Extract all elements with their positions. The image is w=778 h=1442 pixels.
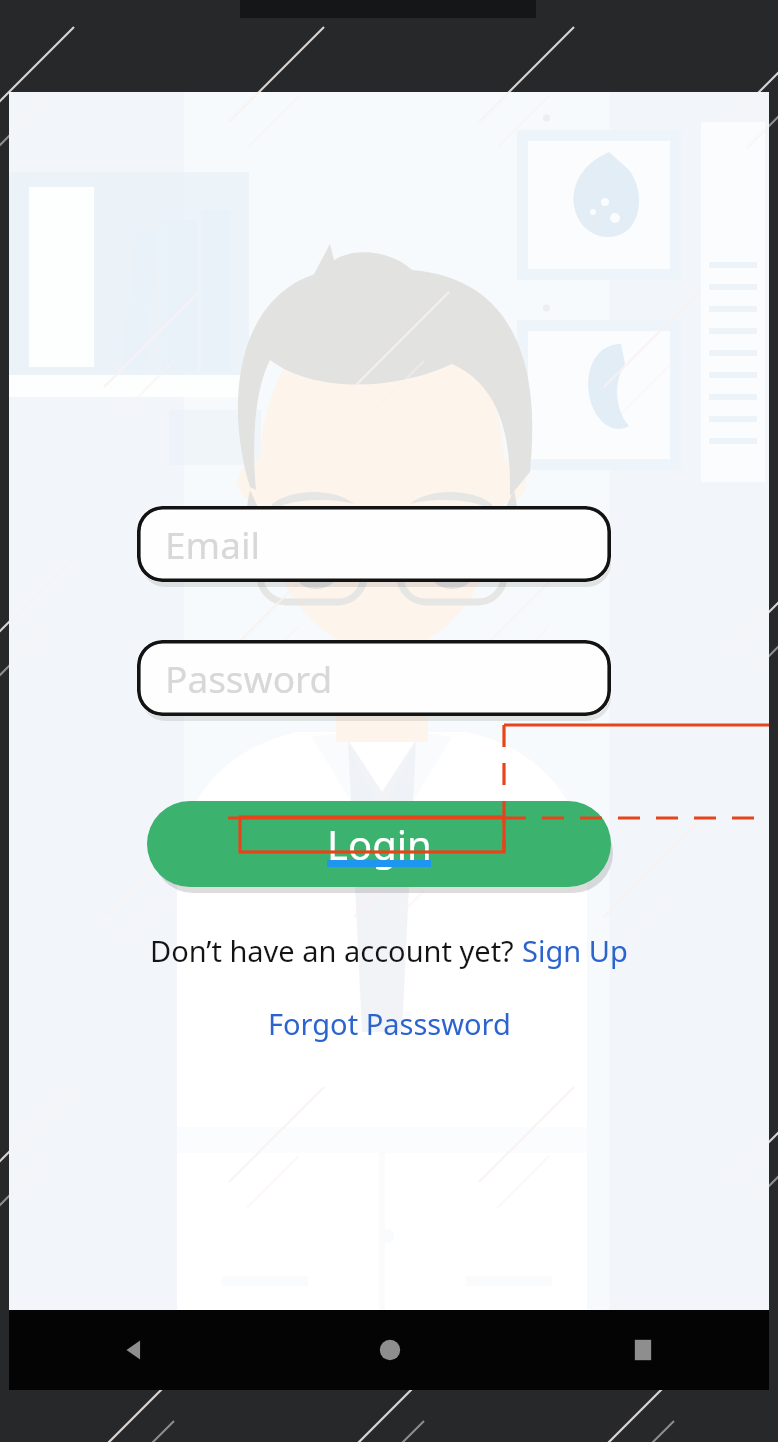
button[interactable]: Sign Up [522,931,628,970]
button[interactable]: Login [147,801,611,887]
staticText: Password [165,653,333,703]
button[interactable]: Email [137,506,611,582]
button[interactable]: Home [263,1310,516,1390]
staticText: Forgot Passsword [268,1004,511,1043]
button[interactable]: Back [9,1310,263,1390]
button[interactable]: Forgot Passsword [260,1000,519,1047]
staticText: Sign Up [522,931,628,970]
staticText: Email [165,519,261,569]
button[interactable]: Recent apps [516,1310,769,1390]
staticText: Login [327,817,432,871]
button[interactable]: Password [137,640,611,716]
staticText: Don’t have an account yet? [150,931,522,970]
